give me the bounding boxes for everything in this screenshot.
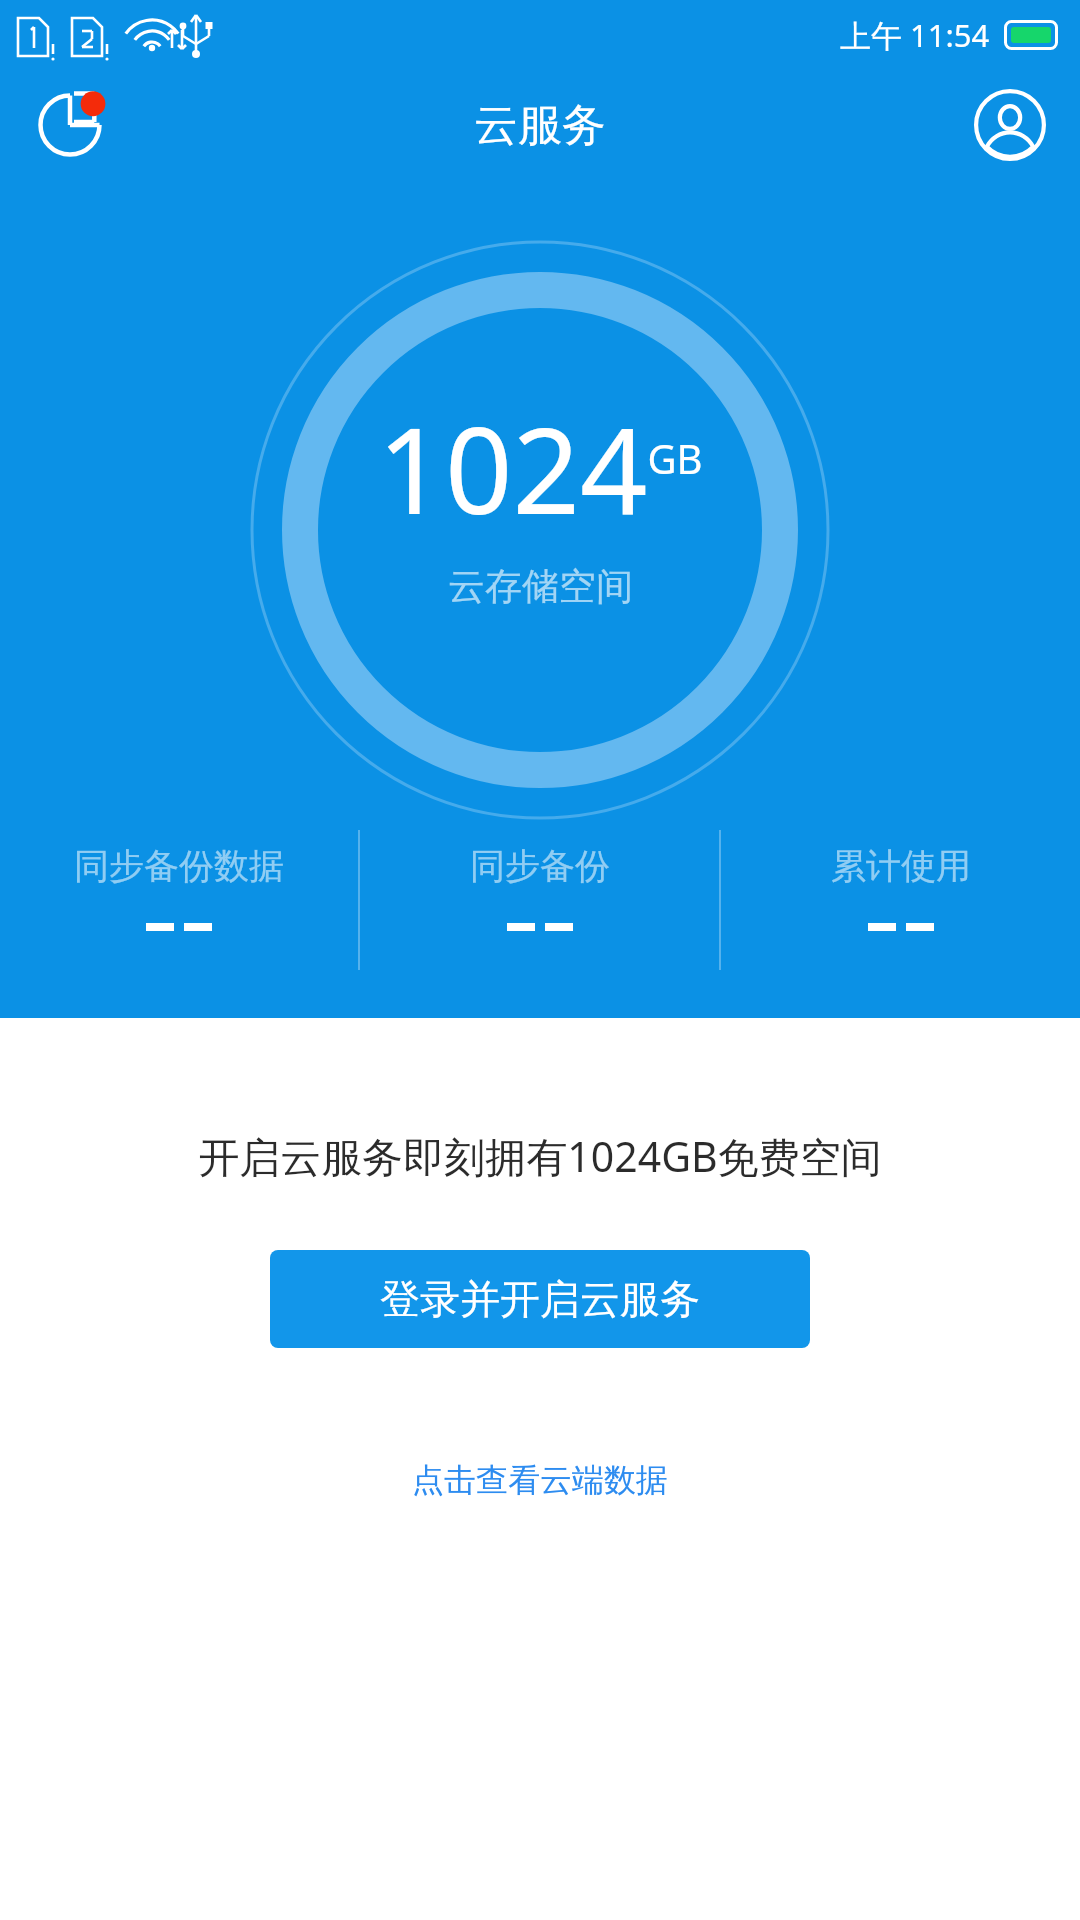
button[interactable]: 登录并开启云服务 (270, 1250, 810, 1348)
staticText: 开启云服务即刻拥有1024GB免费空间 (198, 1128, 882, 1184)
button[interactable]: 累计使用 (721, 830, 1080, 954)
button[interactable]: 同步备份数据 (0, 830, 358, 954)
button[interactable]: 同步备份 (360, 830, 719, 954)
button[interactable]: 存储统计 (18, 73, 122, 177)
staticText: 登录并开启云服务 (380, 1274, 700, 1324)
staticText: 云存储空间 (448, 563, 633, 610)
staticText: 累计使用 (831, 844, 971, 888)
staticText: 云服务 (474, 98, 606, 153)
button[interactable]: 点击查看云端数据 (388, 1450, 692, 1510)
button[interactable]: 账户 (958, 73, 1062, 177)
staticText: 上午 11:54 (840, 14, 990, 56)
staticText: 1024GB (377, 388, 703, 549)
staticText: 同步备份 (470, 844, 610, 888)
staticText: 同步备份数据 (74, 844, 284, 888)
staticText: 点击查看云端数据 (412, 1460, 668, 1500)
